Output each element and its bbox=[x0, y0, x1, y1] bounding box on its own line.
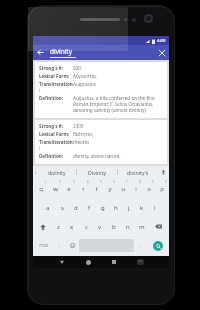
button[interactable]: 1 bbox=[34, 180, 48, 197]
button[interactable]: Back bbox=[49, 256, 75, 268]
button[interactable]: divinity bbox=[37, 166, 76, 178]
staticText: k bbox=[140, 204, 144, 212]
button[interactable]: Search bbox=[153, 241, 163, 251]
button[interactable]: Backspace bbox=[149, 218, 168, 235]
button[interactable]: Strong's #: bbox=[35, 120, 167, 164]
staticText: d bbox=[74, 204, 78, 212]
staticText: Transliteration: bbox=[39, 81, 73, 93]
button[interactable]: 4 bbox=[76, 180, 90, 197]
button[interactable]: f bbox=[83, 199, 96, 216]
staticText: 4:00 bbox=[157, 38, 166, 44]
button[interactable]: 5 bbox=[90, 180, 103, 197]
button[interactable]: 9 bbox=[142, 180, 155, 197]
button[interactable]: m bbox=[135, 218, 149, 235]
staticText: b bbox=[112, 223, 116, 231]
button[interactable]: Recents bbox=[101, 256, 127, 268]
staticText: 6 bbox=[113, 180, 115, 184]
button[interactable]: , bbox=[53, 237, 66, 254]
staticText: 8 bbox=[139, 180, 141, 184]
button[interactable]: n bbox=[121, 218, 135, 235]
button[interactable]: ?123 bbox=[34, 237, 53, 254]
button[interactable]: 0 bbox=[155, 180, 168, 197]
staticText: θεότητος bbox=[73, 131, 93, 137]
staticText: 1 bbox=[45, 180, 47, 184]
staticText: ?123 bbox=[39, 243, 49, 249]
staticText: . bbox=[140, 242, 142, 249]
button[interactable]: 6 bbox=[103, 180, 116, 197]
button[interactable]: c bbox=[79, 218, 93, 235]
staticText: Αὔγουστος bbox=[73, 73, 97, 79]
button[interactable]: v bbox=[93, 218, 107, 235]
staticText: p bbox=[160, 185, 164, 193]
staticText: Strong's #: bbox=[39, 65, 73, 71]
staticText: 9 bbox=[152, 180, 154, 184]
button[interactable]: Emoji bbox=[66, 237, 79, 254]
button[interactable]: Strong's #: bbox=[35, 62, 167, 118]
staticText: Augustus, a title conferred on the first… bbox=[73, 95, 155, 113]
button[interactable]: Hide keyboard bbox=[127, 256, 153, 268]
staticText: 3 bbox=[73, 180, 75, 184]
button[interactable]: h bbox=[109, 199, 122, 216]
button[interactable]: divinity bbox=[50, 47, 150, 58]
button[interactable]: a bbox=[41, 199, 55, 216]
button[interactable]: Home bbox=[75, 256, 101, 268]
staticText: i bbox=[135, 185, 137, 193]
staticText: l bbox=[154, 204, 156, 212]
button[interactable]: Voice input bbox=[158, 166, 169, 178]
button[interactable]: b bbox=[107, 218, 121, 235]
staticText: g bbox=[101, 204, 105, 212]
staticText: divinity, divine nature. bbox=[73, 153, 121, 159]
staticText: a bbox=[46, 204, 50, 212]
button[interactable]: . bbox=[134, 237, 147, 254]
staticText: u bbox=[121, 185, 125, 193]
staticText: f bbox=[88, 204, 91, 212]
staticText: v bbox=[98, 223, 102, 231]
button[interactable]: 8 bbox=[129, 180, 142, 197]
staticText: m bbox=[139, 223, 145, 231]
staticText: Transliteration: bbox=[39, 139, 73, 151]
staticText: e bbox=[67, 185, 71, 193]
button[interactable]: x bbox=[65, 218, 79, 235]
button[interactable]: divinity's bbox=[118, 166, 158, 178]
staticText: Definition: bbox=[39, 95, 73, 101]
staticText: z bbox=[57, 223, 60, 231]
button[interactable]: 2 bbox=[48, 180, 62, 197]
button[interactable]: Divinity bbox=[77, 166, 117, 178]
staticText: 4 bbox=[87, 180, 89, 184]
button[interactable]: Shift bbox=[34, 218, 52, 235]
staticText: x bbox=[70, 223, 74, 231]
staticText: Strong's #: bbox=[39, 123, 73, 129]
staticText: w bbox=[53, 185, 58, 193]
staticText: q bbox=[39, 185, 43, 193]
staticText: 7 bbox=[126, 180, 128, 184]
staticText: s bbox=[61, 204, 64, 212]
button[interactable]: z bbox=[52, 218, 65, 235]
staticText: j bbox=[128, 204, 130, 212]
staticText: theotēs bbox=[73, 139, 90, 145]
staticText: Augoustos bbox=[73, 81, 97, 87]
staticText: 2 bbox=[59, 180, 61, 184]
button[interactable]: Back bbox=[33, 45, 48, 60]
staticText: r bbox=[82, 185, 85, 193]
staticText: 2305 bbox=[73, 123, 84, 129]
button[interactable]: d bbox=[69, 199, 83, 216]
button[interactable]: g bbox=[96, 199, 109, 216]
staticText: n bbox=[126, 223, 130, 231]
staticText: divinity bbox=[48, 169, 66, 176]
button[interactable]: j bbox=[122, 199, 135, 216]
staticText: Lexical Form: bbox=[39, 131, 73, 137]
button[interactable]: 3 bbox=[62, 180, 76, 197]
button[interactable]: Clear bbox=[154, 45, 169, 60]
staticText: , bbox=[59, 242, 61, 249]
button[interactable]: k bbox=[135, 199, 148, 216]
staticText: 020 bbox=[73, 65, 81, 71]
button[interactable]: 7 bbox=[116, 180, 129, 197]
staticText: 0 bbox=[165, 180, 167, 184]
staticText: Definition: bbox=[39, 153, 73, 159]
button[interactable]: l bbox=[148, 199, 161, 216]
staticText: Divinity bbox=[88, 169, 107, 176]
staticText: › bbox=[35, 169, 37, 176]
staticText: 5 bbox=[100, 180, 102, 184]
button[interactable]: s bbox=[55, 199, 69, 216]
